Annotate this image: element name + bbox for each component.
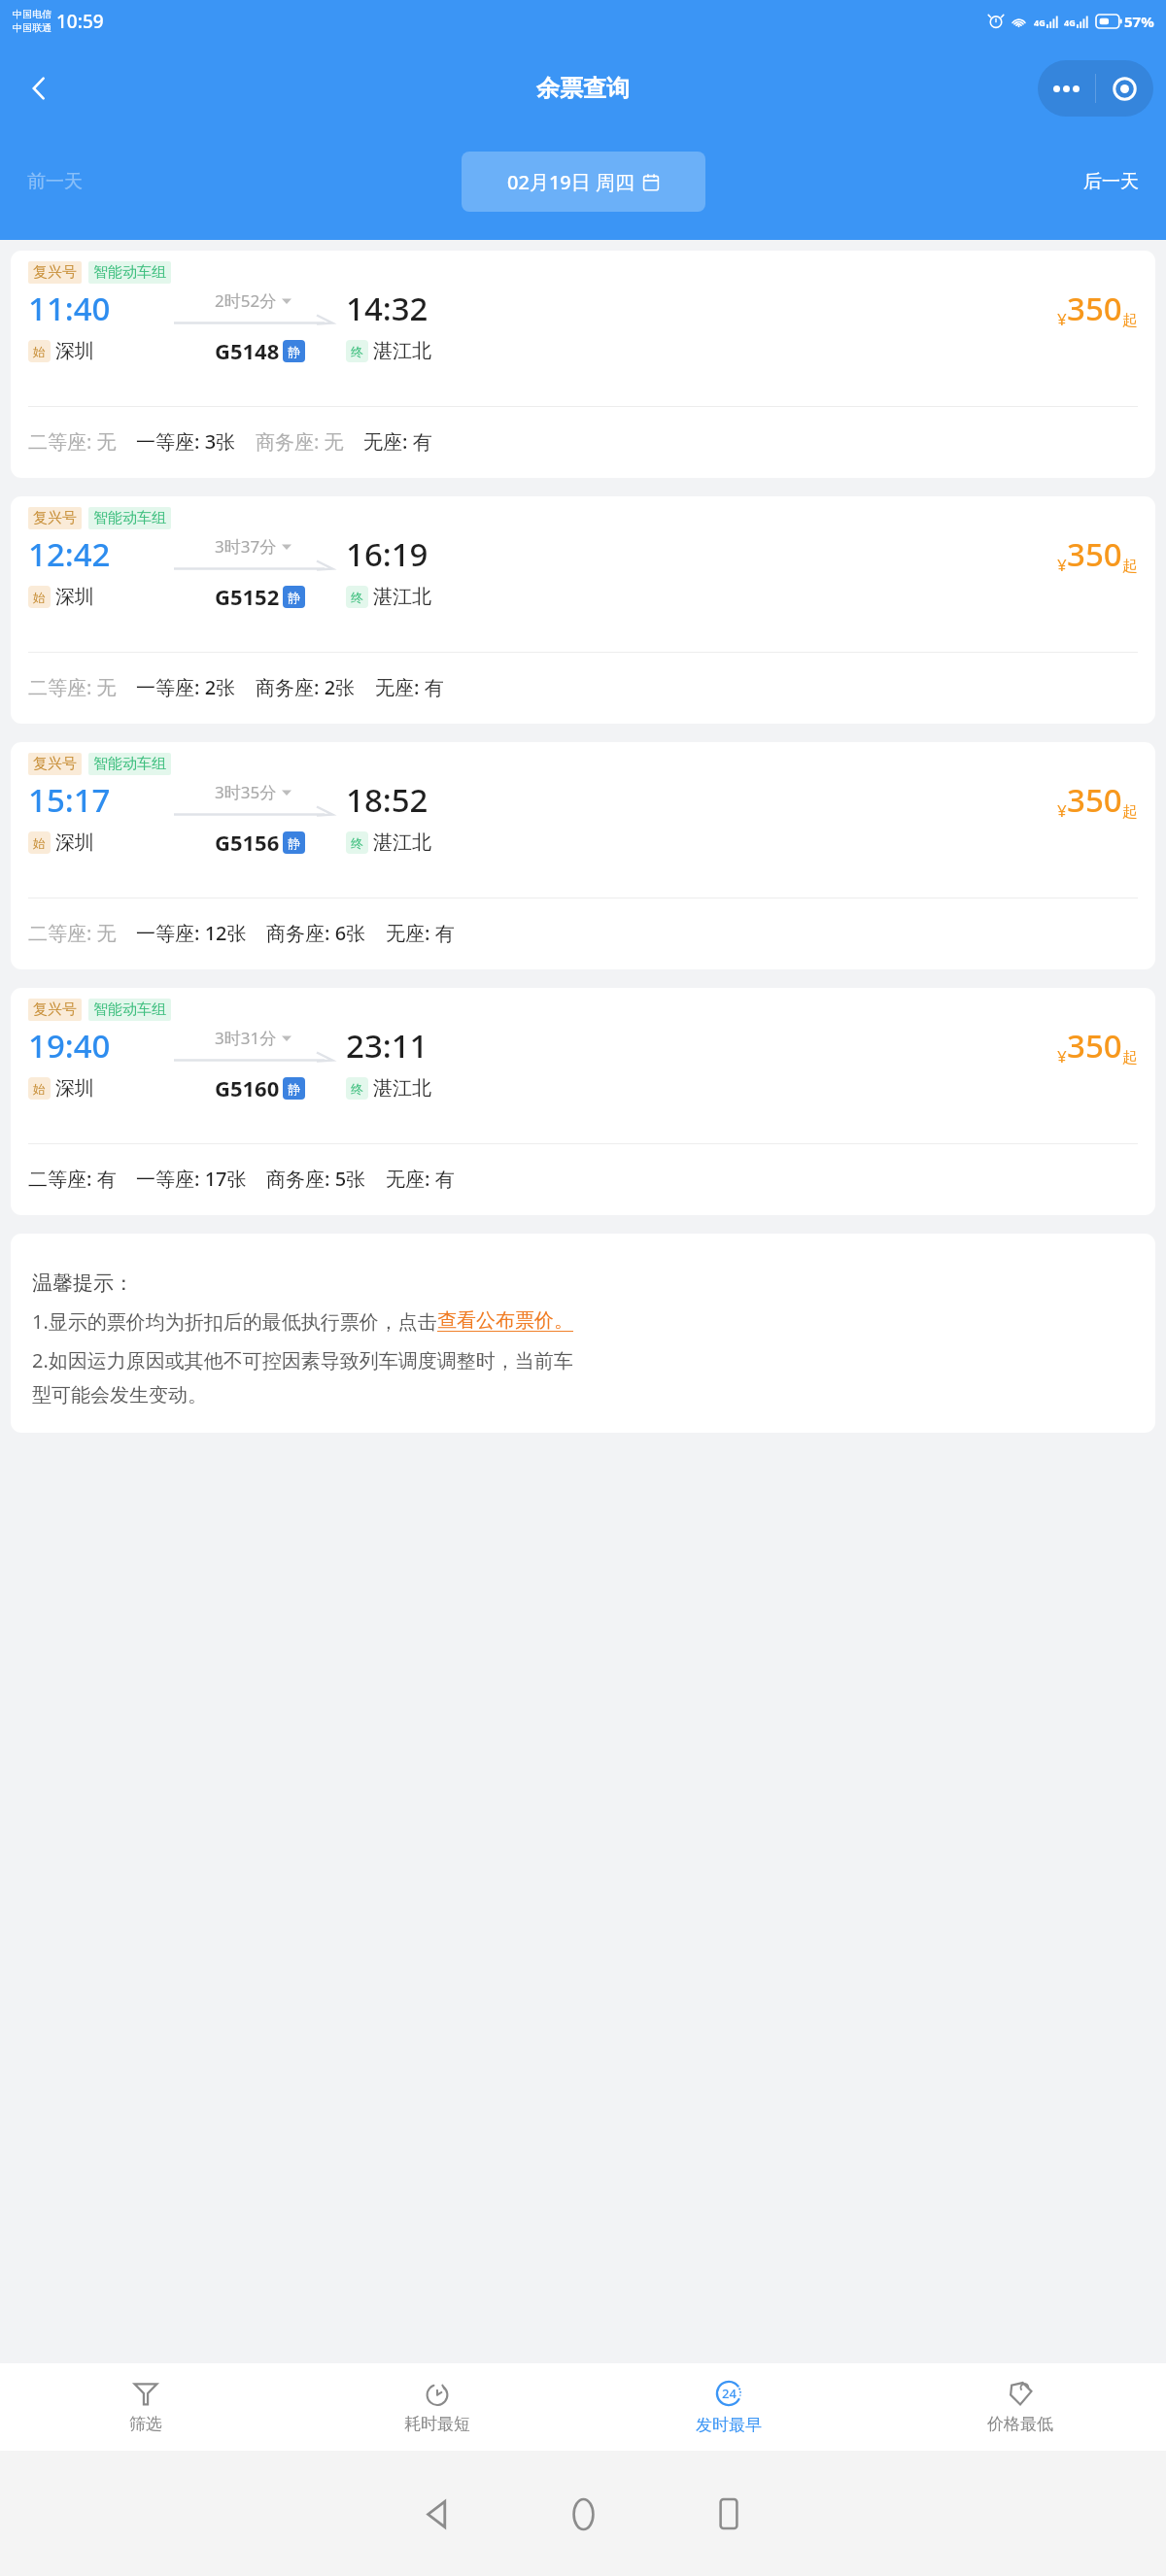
staticText: 深圳 [55,585,94,609]
staticText: 二等座: 有 [28,1166,117,1192]
staticText: 复兴号 [33,1000,77,1019]
staticText: 3时37分 [215,535,277,558]
button[interactable]: Back [394,2470,481,2558]
staticText: 静 [288,344,300,359]
staticText: 余票查询 [536,74,630,103]
staticText: 12:42 [28,532,111,576]
staticText: 深圳 [55,830,94,855]
staticText: 24 [722,2385,737,2402]
button[interactable]: 耗时最短 [291,2363,583,2451]
staticText: 查看公布票价。 [437,1308,573,1333]
button[interactable]: Back [12,61,66,116]
staticText: 终 [351,590,363,605]
staticText: 静 [288,835,300,851]
staticText: 商务座: 5张 [266,1166,366,1192]
button[interactable]: 筛选 [0,2363,291,2451]
staticText: 商务座: 无 [256,428,344,455]
button[interactable]: Close [1096,60,1153,117]
staticText: 4G [1064,17,1076,28]
button[interactable]: 24 [583,2363,874,2451]
staticText: 中国电信 [13,8,51,20]
button[interactable]: 复兴号 [11,251,1155,478]
staticText: 智能动车组 [93,755,166,773]
staticText: 350 [1067,287,1122,330]
staticText: 后一天 [1083,170,1139,193]
staticText: ¥ [1057,799,1067,822]
staticText: 价格最低 [987,2414,1053,2434]
staticText: 终 [351,835,363,851]
staticText: 02月19日 周四 [507,169,634,195]
staticText: 中国联通 [13,21,51,34]
staticText: 温馨提示： [32,1271,134,1296]
button[interactable]: 02月19日 周四 [462,152,705,212]
button[interactable]: 前一天 [27,170,83,193]
staticText: 无座: 有 [386,920,455,946]
staticText: 湛江北 [373,339,431,363]
staticText: 350 [1067,532,1122,576]
staticText: 复兴号 [33,263,77,282]
staticText: 3时35分 [215,781,277,803]
staticText: 筛选 [129,2414,162,2434]
staticText: 终 [351,1081,363,1097]
staticText: 智能动车组 [93,509,166,527]
staticText: 商务座: 2张 [256,674,356,700]
staticText: 起 [1122,311,1138,330]
staticText: 无座: 有 [363,428,432,455]
staticText: ¥ [1057,1045,1067,1068]
staticText: 智能动车组 [93,1000,166,1019]
button[interactable]: Home [539,2470,627,2558]
button[interactable]: 查看公布票价。 [437,1308,573,1333]
staticText: ¥ [1057,554,1067,576]
staticText: 二等座: 无 [28,920,117,946]
staticText: 57% [1124,12,1154,31]
staticText: 复兴号 [33,755,77,773]
staticText: 智能动车组 [93,263,166,282]
button[interactable]: Recents [685,2470,772,2558]
staticText: 2时52分 [215,289,277,312]
staticText: 深圳 [55,339,94,363]
staticText: 11:40 [28,287,111,330]
staticText: 2.如因运力原因或其他不可控因素导致列车调度调整时，当前车 [32,1347,573,1373]
button[interactable]: 后一天 [1083,170,1139,193]
staticText: 前一天 [27,170,83,193]
staticText: 复兴号 [33,509,77,527]
button[interactable]: More options [1038,60,1095,117]
staticText: 型可能会发生变动。 [32,1383,207,1407]
staticText: 起 [1122,1048,1138,1068]
staticText: G5148 [215,336,280,365]
staticText: 静 [288,590,300,605]
staticText: 湛江北 [373,1076,431,1101]
staticText: 静 [288,1081,300,1097]
staticText: 4G [1034,17,1046,28]
staticText: 19:40 [28,1024,111,1068]
staticText: 起 [1122,557,1138,576]
staticText: 18:52 [346,778,429,822]
staticText: 发时最早 [696,2415,762,2435]
staticText: 湛江北 [373,830,431,855]
staticText: G5160 [215,1073,280,1102]
staticText: 16:19 [346,532,429,576]
staticText: 无座: 有 [375,674,444,700]
staticText: 23:11 [346,1024,429,1068]
staticText: 无座: 有 [386,1166,455,1192]
staticText: G5152 [215,582,280,611]
button[interactable]: 复兴号 [11,988,1155,1215]
staticText: 350 [1067,1024,1122,1068]
staticText: 商务座: 6张 [266,920,366,946]
staticText: 始 [33,835,46,851]
staticText: 始 [33,1081,46,1097]
staticText: G5156 [215,828,280,857]
staticText: 一等座: 12张 [136,920,247,946]
staticText: 1.显示的票价均为折扣后的最低执行票价，点击 [32,1308,437,1335]
staticText: 3时31分 [215,1027,277,1049]
staticText: 一等座: 2张 [136,674,236,700]
staticText: 深圳 [55,1076,94,1101]
staticText: 始 [33,590,46,605]
button[interactable]: 复兴号 [11,496,1155,724]
staticText: 二等座: 无 [28,428,117,455]
staticText: 14:32 [346,287,429,330]
staticText: 一等座: 3张 [136,428,236,455]
button[interactable]: 价格最低 [874,2363,1166,2451]
staticText: 起 [1122,802,1138,822]
button[interactable]: 复兴号 [11,742,1155,969]
